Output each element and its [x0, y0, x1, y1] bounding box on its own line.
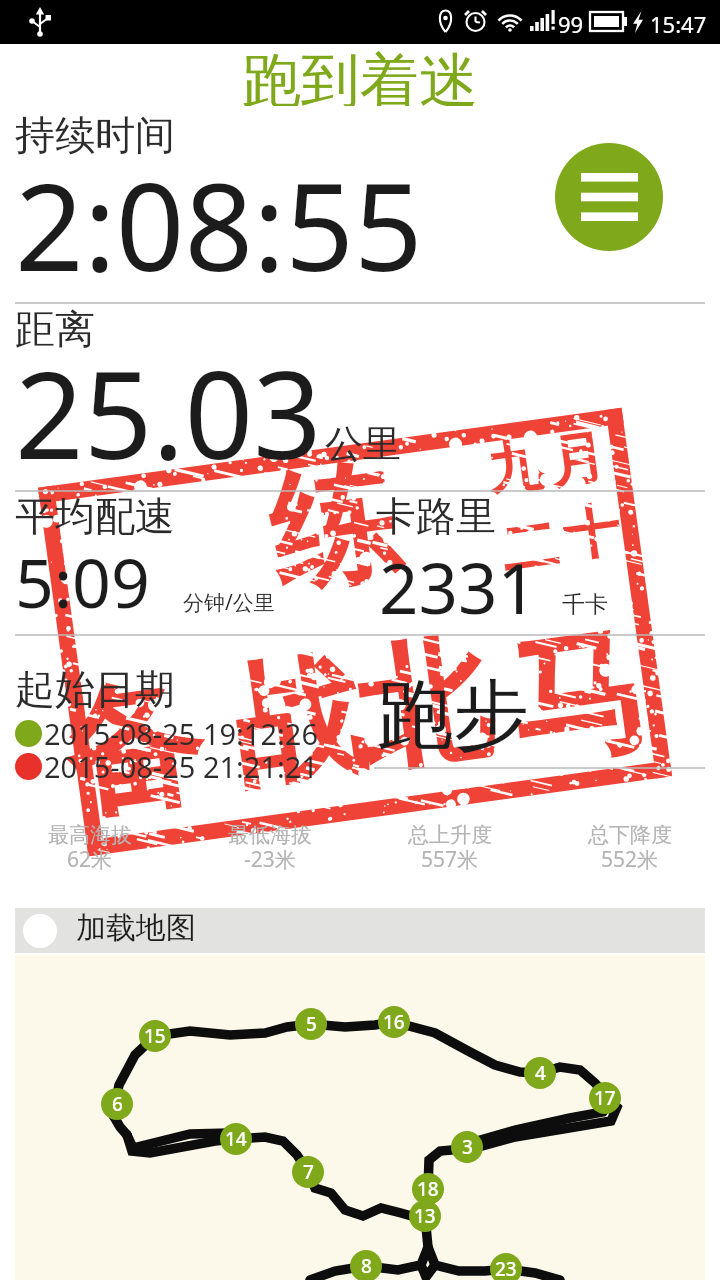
staticText: 15: [144, 1023, 166, 1049]
staticText: 13: [414, 1203, 436, 1229]
staticText: 62米: [67, 845, 113, 874]
staticText: 25.03: [15, 331, 322, 494]
staticText: 5:09: [15, 535, 150, 628]
staticText: 持续时间: [15, 110, 175, 160]
staticText: 千卡: [562, 590, 608, 619]
staticText: 8: [361, 1253, 372, 1279]
staticText: 2015-08-25 21:21:21: [44, 747, 318, 786]
staticText: 总下降度: [588, 822, 672, 848]
staticText: 99: [558, 9, 584, 39]
staticText: 552米: [601, 845, 659, 874]
staticText: 分钟/公里: [183, 588, 275, 617]
staticText: 2:08:55: [15, 143, 423, 306]
staticText: -23米: [244, 845, 296, 874]
staticText: 2331: [379, 540, 537, 634]
staticText: 23: [495, 1256, 517, 1280]
staticText: 2015-08-25 19:12:26: [44, 714, 318, 753]
staticText: 14: [225, 1126, 247, 1152]
staticText: 公里: [325, 420, 401, 468]
staticText: 6: [112, 1091, 123, 1117]
staticText: 距离: [15, 304, 95, 354]
staticText: 平均配速: [15, 491, 175, 541]
staticText: 557米: [421, 845, 479, 874]
staticText: 3: [462, 1134, 473, 1160]
staticText: 最低海拔: [228, 822, 312, 848]
staticText: 7: [303, 1159, 314, 1185]
staticText: 总上升度: [408, 822, 492, 848]
staticText: 卡路里: [376, 491, 496, 541]
staticText: 18: [417, 1176, 439, 1202]
staticText: 4: [535, 1060, 546, 1086]
staticText: 跑到着迷: [242, 44, 478, 106]
button[interactable]: Menu: [555, 143, 663, 251]
staticText: 17: [594, 1085, 616, 1111]
staticText: 跑步: [377, 668, 529, 764]
staticText: 5: [306, 1011, 317, 1037]
button[interactable]: 加载地图: [15, 908, 705, 953]
staticText: 加载地图: [76, 909, 196, 947]
staticText: 16: [383, 1009, 405, 1035]
staticText: 起始日期: [15, 664, 175, 714]
staticText: 最高海拔: [48, 822, 132, 848]
staticText: 15:47: [650, 9, 707, 39]
